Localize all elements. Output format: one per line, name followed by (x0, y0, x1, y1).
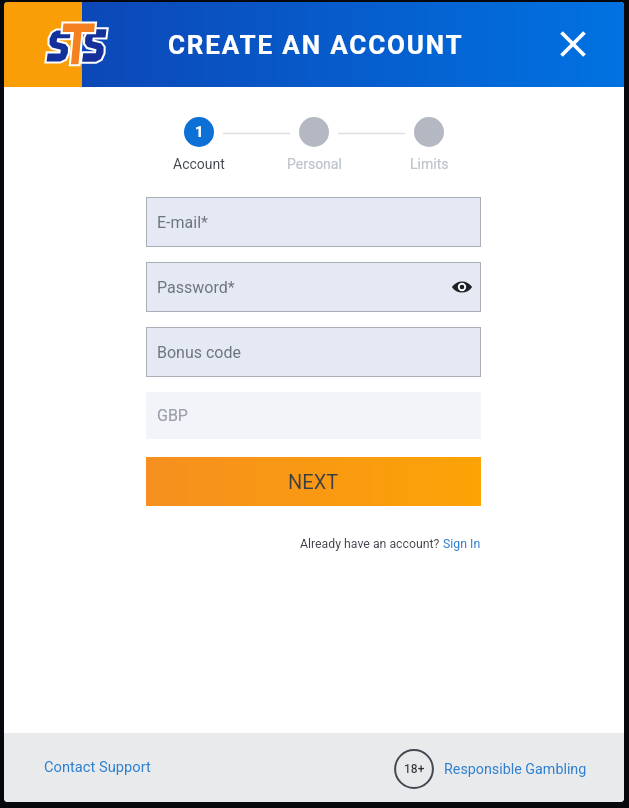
staticText: GBP (157, 406, 188, 425)
button[interactable]: NEXT (146, 457, 481, 506)
staticText: Responsible Gambling (444, 761, 587, 778)
staticText: Already have an account? (300, 537, 443, 551)
button[interactable]: Sign In (443, 537, 481, 551)
staticText: NEXT (288, 470, 339, 493)
button[interactable]: Personal (264, 117, 364, 172)
button[interactable]: Limits (379, 117, 479, 172)
staticText: 1 (195, 123, 204, 141)
button[interactable]: 18+ (394, 749, 587, 789)
button[interactable]: Contact Support (44, 758, 151, 775)
staticText: Bonus code (157, 343, 241, 362)
staticText: CREATE AN ACCOUNT (168, 30, 464, 60)
button[interactable]: GBP (146, 392, 481, 439)
staticText: 18+ (404, 762, 425, 776)
staticText: Limits (410, 156, 449, 172)
button[interactable]: E-mail* (146, 197, 481, 247)
staticText: Personal (287, 156, 342, 172)
staticText: Password* (157, 278, 235, 297)
staticText: Account (173, 156, 225, 172)
button[interactable]: Show password (451, 276, 473, 298)
button[interactable]: Password* (146, 262, 481, 312)
button[interactable]: 1 (149, 117, 249, 172)
button[interactable]: Close (556, 27, 590, 61)
staticText: E-mail* (157, 213, 208, 232)
button[interactable]: Bonus code (146, 327, 481, 377)
